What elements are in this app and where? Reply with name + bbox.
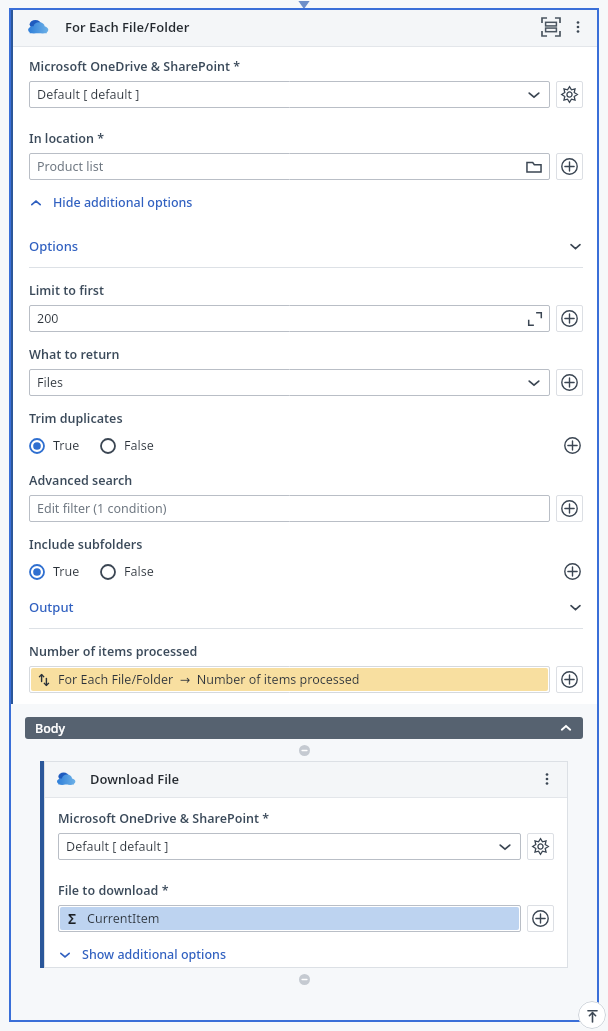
button[interactable]: Product list	[29, 153, 550, 180]
button[interactable]: Add dynamic content	[561, 434, 583, 456]
staticText: False	[124, 437, 154, 454]
button[interactable]: Σ	[60, 907, 519, 930]
staticText: Advanced search	[29, 472, 133, 489]
button[interactable]: Body	[25, 717, 583, 739]
button[interactable]: Settings	[527, 833, 554, 860]
staticText: For Each File/Folder	[65, 18, 190, 36]
button[interactable]: False	[100, 563, 154, 580]
button[interactable]: True	[29, 563, 80, 580]
button[interactable]: True	[29, 437, 80, 454]
staticText: True	[53, 437, 80, 454]
staticText: 200	[37, 310, 59, 327]
staticText: Options	[29, 237, 79, 255]
button[interactable]: False	[100, 437, 154, 454]
staticText: In location *	[29, 130, 105, 147]
staticText: Download File	[90, 770, 180, 788]
button[interactable]: Expand view	[539, 15, 563, 39]
staticText: Limit to first	[29, 282, 105, 299]
button[interactable]: More options	[567, 16, 589, 38]
staticText: Number of items processed	[29, 643, 198, 660]
staticText: False	[124, 563, 154, 580]
button[interactable]: Show additional options	[58, 943, 226, 966]
button[interactable]: Add dynamic content	[527, 905, 554, 932]
staticText: File to download *	[58, 882, 169, 899]
button[interactable]: 200	[29, 305, 550, 332]
staticText: Include subfolders	[29, 536, 143, 553]
button[interactable]: Files	[29, 369, 550, 396]
button[interactable]: For Each File/Folder	[13, 8, 599, 46]
button[interactable]: Add dynamic content	[556, 153, 583, 180]
staticText: For Each File/Folder → Number of items p…	[58, 671, 360, 688]
button[interactable]: For Each File/Folder → Number of items p…	[31, 668, 548, 691]
button[interactable]: Hide additional options	[29, 191, 193, 214]
button[interactable]: Add dynamic content	[556, 305, 583, 332]
staticText: Body	[35, 720, 66, 737]
button[interactable]: More options	[536, 768, 558, 790]
staticText: Microsoft OneDrive & SharePoint *	[58, 810, 270, 827]
staticText: Hide additional options	[53, 194, 193, 211]
staticText: Microsoft OneDrive & SharePoint *	[29, 58, 241, 75]
staticText: Default [ default ]	[37, 86, 140, 103]
button[interactable]: Scroll to top	[578, 1001, 606, 1029]
staticText: Product list	[37, 158, 104, 175]
staticText: Trim duplicates	[29, 410, 123, 427]
button[interactable]: Add dynamic content	[556, 495, 583, 522]
button[interactable]: Default [ default ]	[29, 81, 550, 108]
staticText: Default [ default ]	[66, 838, 169, 855]
staticText: Show additional options	[82, 946, 226, 963]
staticText: CurrentItem	[87, 910, 160, 927]
staticText: True	[53, 563, 80, 580]
staticText: Σ	[68, 909, 77, 928]
button[interactable]: Add dynamic content	[556, 666, 583, 693]
button[interactable]: Add dynamic content	[561, 560, 583, 582]
button[interactable]: Default [ default ]	[58, 833, 521, 860]
staticText: Edit filter (1 condition)	[37, 500, 167, 517]
button[interactable]: Settings	[556, 81, 583, 108]
button[interactable]: Edit filter (1 condition)	[29, 495, 550, 522]
button[interactable]: Output	[29, 594, 583, 620]
button[interactable]: Add dynamic content	[556, 369, 583, 396]
staticText: What to return	[29, 346, 120, 363]
button[interactable]: Options	[29, 233, 583, 259]
staticText: Output	[29, 598, 74, 616]
button[interactable]: Download File	[44, 761, 568, 797]
staticText: Files	[37, 374, 63, 391]
